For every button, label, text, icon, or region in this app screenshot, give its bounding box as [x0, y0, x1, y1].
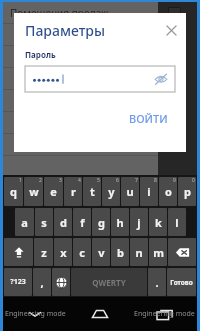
button[interactable]: d	[54, 208, 72, 236]
staticText: j	[137, 215, 141, 230]
staticText: Помещения продаж	[10, 6, 109, 20]
button[interactable]	[3, 90, 197, 111]
staticText: 6	[116, 177, 119, 184]
button[interactable]: p	[178, 177, 196, 206]
button[interactable]	[3, 134, 197, 155]
staticText: ВОЙТИ	[129, 111, 168, 126]
staticText: i	[147, 184, 151, 199]
staticText: y	[108, 184, 115, 199]
staticText: 4	[78, 177, 81, 184]
button[interactable]	[3, 112, 197, 133]
button[interactable]: Назад	[3, 297, 67, 331]
button[interactable]: a	[15, 208, 34, 236]
button[interactable]: q	[4, 177, 23, 206]
button[interactable]: v	[92, 238, 110, 266]
staticText: w	[29, 184, 39, 199]
staticText: o	[165, 184, 172, 199]
staticText: 0	[192, 177, 195, 184]
button[interactable]: y	[102, 177, 120, 206]
button[interactable]: f	[73, 208, 91, 236]
button[interactable]: .	[148, 268, 166, 296]
staticText: Engineering mode	[5, 309, 66, 319]
button[interactable]: g	[92, 208, 110, 236]
button[interactable]	[3, 24, 197, 45]
staticText: q	[10, 184, 17, 199]
button[interactable]: h	[111, 208, 129, 236]
staticText: Параметры	[25, 21, 105, 40]
staticText: n	[135, 245, 143, 260]
button[interactable]: e	[44, 177, 63, 206]
staticText: ?123	[10, 277, 26, 287]
staticText: p	[184, 184, 191, 199]
button[interactable]: z	[34, 238, 53, 266]
button[interactable]: QWERTY	[71, 268, 147, 296]
button[interactable]: ?123	[4, 268, 32, 296]
staticText: Пароль	[25, 49, 56, 60]
button[interactable]: u	[121, 177, 139, 206]
button[interactable]: ,	[33, 268, 51, 296]
button[interactable]: Последние приложения	[132, 297, 197, 331]
staticText: d	[60, 215, 67, 230]
staticText: ,	[40, 275, 44, 290]
staticText: u	[126, 184, 134, 199]
button[interactable]: i	[140, 177, 158, 206]
staticText: 5	[97, 177, 100, 184]
staticText: QWERTY	[92, 277, 126, 288]
button[interactable]: l	[168, 208, 186, 236]
button[interactable]: s	[35, 208, 53, 236]
button[interactable]: w	[24, 177, 43, 206]
button[interactable]: m	[149, 238, 167, 266]
staticText: a	[21, 215, 28, 230]
staticText: k	[155, 215, 162, 230]
staticText: Готово	[170, 278, 193, 287]
staticText: z	[41, 245, 47, 260]
button[interactable]: k	[149, 208, 167, 236]
button[interactable]: Главный экран	[67, 297, 132, 331]
staticText: t	[90, 184, 95, 199]
button[interactable]: Готово	[167, 268, 196, 296]
staticText: 8	[154, 177, 157, 184]
button[interactable]: Показать пароль	[25, 66, 175, 92]
staticText: b	[117, 245, 124, 260]
staticText: h	[116, 215, 124, 230]
staticText: 3	[59, 177, 62, 184]
button[interactable]: Shift	[4, 238, 33, 266]
button[interactable]: Сменить язык	[52, 268, 70, 296]
button[interactable]: ВОЙТИ	[123, 107, 174, 130]
staticText: r	[71, 184, 76, 199]
staticText: e	[50, 184, 57, 199]
staticText: l	[175, 215, 179, 230]
staticText: v	[98, 245, 105, 260]
button[interactable]: t	[83, 177, 101, 206]
button[interactable]	[3, 68, 197, 89]
button[interactable]: n	[130, 238, 148, 266]
staticText: .	[155, 275, 159, 290]
button[interactable]	[3, 46, 197, 67]
button[interactable]: c	[73, 238, 91, 266]
button[interactable]: b	[111, 238, 129, 266]
staticText: 7	[135, 177, 138, 184]
staticText: 1	[19, 177, 22, 184]
button[interactable]: Закрыть	[163, 22, 179, 38]
staticText: g	[98, 215, 105, 230]
button[interactable]: r	[64, 177, 82, 206]
button[interactable]: Помещения продаж	[3, 2, 197, 23]
staticText: x	[60, 245, 67, 260]
button[interactable]: j	[130, 208, 148, 236]
staticText: c	[79, 245, 85, 260]
staticText: m	[153, 245, 164, 260]
staticText: s	[41, 215, 47, 230]
button[interactable]: x	[54, 238, 72, 266]
button[interactable]: o	[159, 177, 177, 206]
staticText: f	[80, 215, 85, 230]
button[interactable]: Показать пароль	[154, 72, 168, 86]
staticText: Engineering mode	[134, 309, 195, 319]
staticText: 9	[173, 177, 176, 184]
button[interactable]: Backspace	[168, 238, 196, 266]
staticText: 2	[39, 177, 42, 184]
